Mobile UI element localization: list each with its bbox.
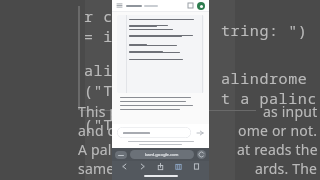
staticText: ("The [84,114,133,134]
staticText: t a palinc [221,88,318,108]
button[interactable] [117,127,191,138]
staticText: and ch [78,121,124,140]
staticText: at reads the [237,140,318,159]
staticText: = inp [84,26,133,46]
button[interactable]: Bookmarks [191,161,202,172]
staticText: alind [84,60,133,80]
button[interactable] [126,5,188,7]
button[interactable]: Bard [197,2,205,10]
button[interactable]: Open navigation menu [116,2,123,9]
button[interactable]: Forward [137,161,148,172]
staticText: bard.google.com [145,152,179,158]
staticText: as input [263,102,318,121]
staticText: This pr [78,102,125,121]
button[interactable]: Tabs [173,161,184,172]
button[interactable]: Reload page [197,150,206,159]
button[interactable]: Apps [188,3,193,8]
button[interactable]: bard.google.com [130,150,194,159]
staticText: r cod [84,6,133,26]
staticText: alindrome [221,68,308,88]
button[interactable]: Page settings [115,151,127,159]
staticText: A palin [78,140,125,159]
staticText: ("The [84,80,133,100]
button[interactable]: Send prompt [195,128,204,137]
button[interactable]: Share [155,161,166,172]
staticText: ome or not. [238,121,318,140]
staticText: tring: ") [221,20,308,40]
staticText: same f [78,159,124,178]
staticText: ards. The [255,159,318,178]
button[interactable]: Back [119,161,130,172]
